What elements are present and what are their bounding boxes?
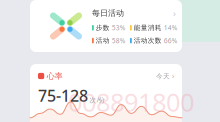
- staticText: 活动: [96, 36, 110, 45]
- staticText: 008891800: [68, 85, 194, 119]
- button[interactable]: 心率: [30, 67, 182, 85]
- button[interactable]: 每日活动: [30, 0, 182, 52]
- staticText: 75-128: [38, 85, 88, 106]
- staticText: 66%: [164, 36, 178, 45]
- staticText: 14%: [164, 23, 178, 32]
- staticText: 步数: [96, 24, 110, 32]
- staticText: 每日活动: [92, 8, 124, 18]
- staticText: 今天 ›: [156, 72, 174, 80]
- staticText: 活动次数: [134, 36, 162, 45]
- staticText: 53%: [112, 23, 126, 32]
- staticText: 心率: [47, 71, 63, 81]
- staticText: 能量消耗: [134, 24, 162, 32]
- staticText: 58%: [112, 36, 126, 45]
- staticText: ›: [173, 7, 176, 19]
- staticText: 次/分: [89, 96, 105, 104]
